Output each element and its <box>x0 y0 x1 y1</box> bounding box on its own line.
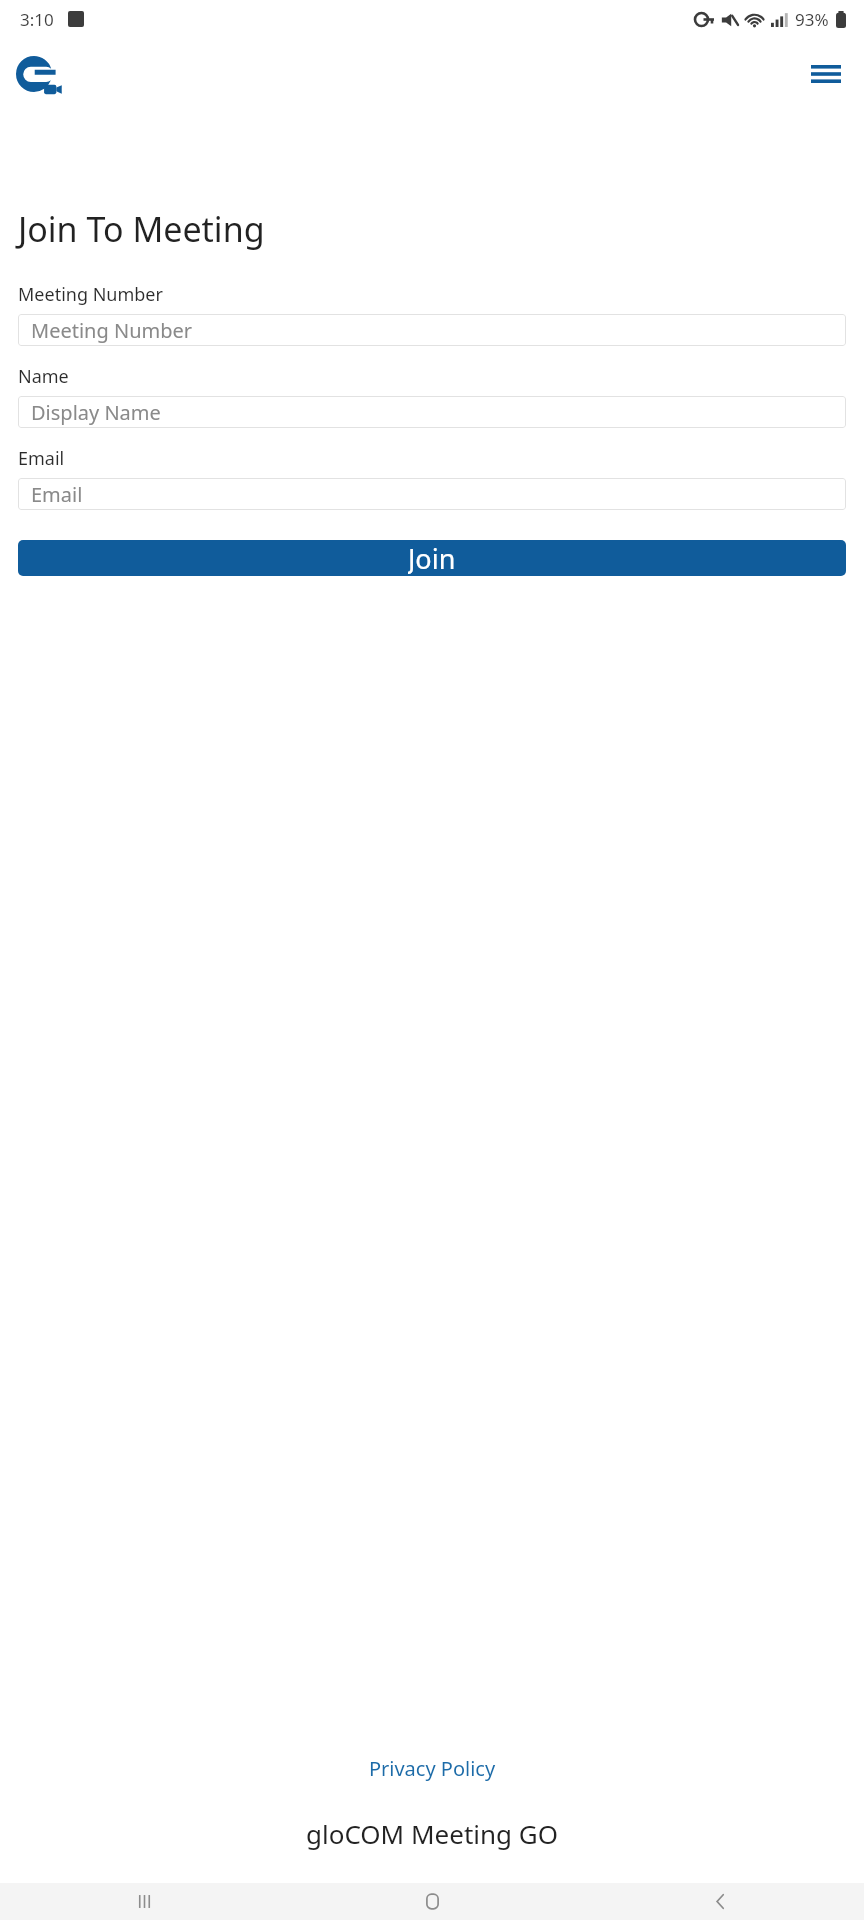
button[interactable]: Back <box>576 1883 864 1920</box>
staticText: Display Name <box>31 399 161 426</box>
staticText: 3:10 <box>20 8 54 31</box>
button[interactable]: Join <box>18 540 846 576</box>
button[interactable]: Home <box>288 1883 576 1920</box>
staticText: Name <box>18 364 69 389</box>
staticText: Email <box>31 481 83 508</box>
button[interactable]: Recents <box>0 1883 288 1920</box>
staticText: Meeting Number <box>18 282 163 307</box>
staticText: Join To Meeting <box>18 206 265 252</box>
staticText: Join <box>408 540 456 576</box>
staticText: Meeting Number <box>31 317 193 344</box>
staticText: gloCOM Meeting GO <box>0 1816 864 1851</box>
button[interactable]: Meeting Number <box>18 314 846 346</box>
button[interactable]: Privacy Policy <box>0 1751 864 1786</box>
staticText: 93% <box>795 8 829 31</box>
button[interactable]: Display Name <box>18 396 846 428</box>
button[interactable]: Menu <box>802 50 850 98</box>
staticText: Email <box>18 446 65 471</box>
button[interactable]: Email <box>18 478 846 510</box>
